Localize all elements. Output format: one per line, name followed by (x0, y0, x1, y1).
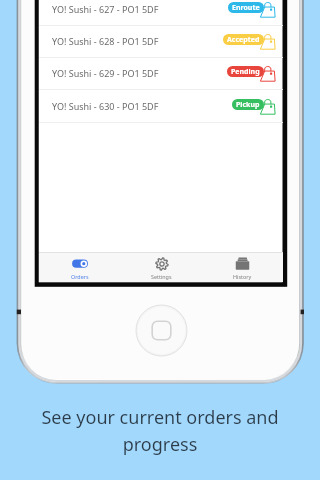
staticText: YO! Sushi - 630 - PO1 5DF (52, 100, 159, 112)
staticText: Enroute (232, 3, 260, 13)
staticText: YO! Sushi - 629 - PO1 5DF (52, 67, 159, 79)
staticText: Orders (71, 273, 89, 280)
button[interactable]: Settings (121, 252, 202, 282)
staticText: Accepted (227, 35, 260, 45)
staticText: Pickup (236, 100, 260, 110)
button[interactable]: YO! Sushi - 627 - PO1 5DF (39, 0, 283, 26)
button[interactable]: History (202, 252, 283, 282)
button[interactable]: YO! Sushi - 630 - PO1 5DF (39, 91, 283, 123)
button[interactable]: YO! Sushi - 629 - PO1 5DF (39, 58, 283, 90)
staticText: See your current orders and progress (30, 405, 290, 456)
staticText: Pending (231, 67, 260, 77)
button[interactable]: Home (136, 305, 187, 356)
staticText: YO! Sushi - 628 - PO1 5DF (52, 35, 159, 47)
staticText: Settings (151, 273, 172, 280)
staticText: History (233, 273, 252, 280)
button[interactable]: YO! Sushi - 628 - PO1 5DF (39, 26, 283, 58)
button[interactable]: Orders (39, 252, 121, 282)
staticText: YO! Sushi - 627 - PO1 5DF (52, 3, 159, 15)
